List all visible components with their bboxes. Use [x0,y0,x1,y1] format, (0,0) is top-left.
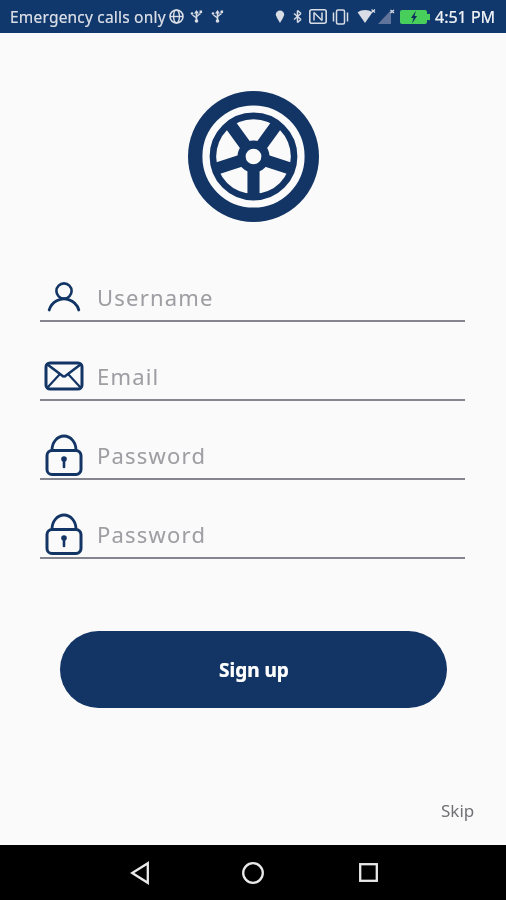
button[interactable] [359,863,378,882]
button[interactable]: Password [40,438,465,480]
staticText: Password [97,519,207,549]
button[interactable]: Sign up [60,631,447,708]
button[interactable]: Skip [436,794,480,827]
button[interactable]: Password [40,517,465,559]
staticText: Skip [441,799,475,822]
staticText: Sign up [219,657,289,683]
button[interactable] [242,862,264,884]
button[interactable]: Email [40,359,465,401]
staticText: Password [97,440,207,470]
staticText: Email [97,361,160,391]
staticText: Emergency calls only [10,6,166,27]
staticText: Username [97,282,214,312]
button[interactable] [131,862,149,884]
button[interactable]: Username [40,280,465,322]
staticText: 4:51 PM [435,6,496,28]
